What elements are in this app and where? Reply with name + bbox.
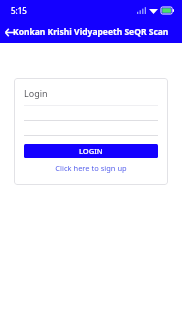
button[interactable]: Click here to sign up: [24, 163, 158, 173]
staticText: Konkan Krishi Vidyapeeth SeQR Scan: [13, 26, 169, 38]
staticText: Login: [24, 87, 48, 99]
staticText: 5:15: [11, 5, 27, 16]
button[interactable]: LOGIN: [24, 144, 158, 158]
staticText: LOGIN: [79, 146, 103, 156]
staticText: Click here to sign up: [55, 163, 127, 173]
button[interactable]: Back: [0, 22, 20, 42]
